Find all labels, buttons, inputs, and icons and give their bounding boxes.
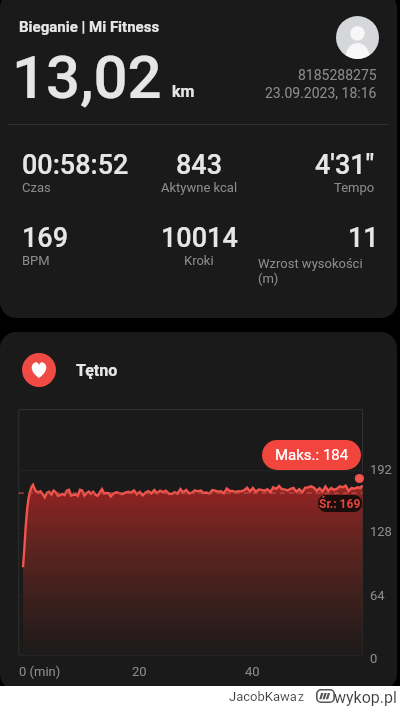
staticText: JacobKawa: [229, 689, 297, 704]
staticText: km: [172, 82, 195, 101]
staticText: 20: [132, 664, 147, 679]
staticText: 843: [176, 149, 223, 181]
staticText: Aktywne kcal: [161, 180, 238, 195]
button[interactable]: Maks.: 184: [262, 440, 361, 470]
staticText: 0: [370, 651, 378, 666]
staticText: 10014: [161, 222, 238, 254]
button[interactable]: Śr.: 169: [318, 495, 362, 512]
staticText: z: [298, 690, 304, 704]
staticText: Wzrost wysokości (m): [258, 256, 373, 286]
staticText: Śr.: 169: [319, 497, 361, 511]
staticText: 11: [348, 222, 379, 254]
button[interactable]: Heart rate: [22, 353, 56, 387]
staticText: 169: [22, 222, 69, 254]
staticText: 128: [370, 524, 392, 539]
staticText: 0 (min): [19, 664, 61, 679]
staticText: 23.09.2023, 18:16: [265, 85, 377, 101]
staticText: 13,02: [12, 42, 162, 112]
staticText: Czas: [22, 180, 51, 195]
staticText: Tempo: [334, 180, 375, 195]
staticText: 40: [245, 664, 260, 679]
staticText: 00:58:52: [22, 149, 129, 181]
staticText: Maks.: 184: [275, 446, 349, 464]
staticText: 64: [370, 588, 385, 603]
staticText: 8185288275: [298, 67, 377, 83]
staticText: 192: [370, 462, 392, 477]
staticText: Kroki: [184, 253, 214, 268]
staticText: 4'31": [315, 149, 375, 181]
button[interactable]: Tętno: [76, 361, 118, 380]
button[interactable]: Profile: [336, 16, 379, 59]
staticText: wykop.pl: [334, 688, 397, 706]
staticText: BPM: [22, 253, 50, 268]
staticText: Bieganie | Mi Fitness: [19, 18, 160, 36]
